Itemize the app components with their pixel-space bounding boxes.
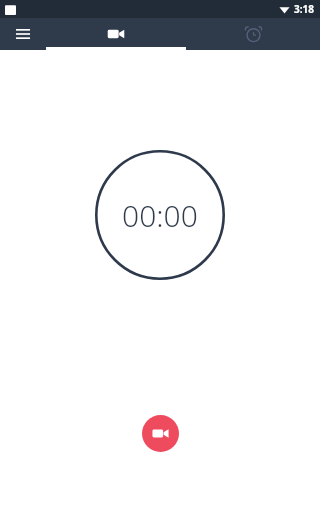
button[interactable]: Alarms tab xyxy=(186,18,320,50)
button[interactable]: Open navigation menu xyxy=(0,18,46,50)
staticText: 00:00 xyxy=(122,195,198,236)
staticText: 3:18 xyxy=(294,2,314,16)
button[interactable]: Recording timer 00:00 xyxy=(95,150,225,280)
button[interactable]: Recorder tab xyxy=(46,18,186,50)
button[interactable]: Start recording xyxy=(142,415,179,452)
